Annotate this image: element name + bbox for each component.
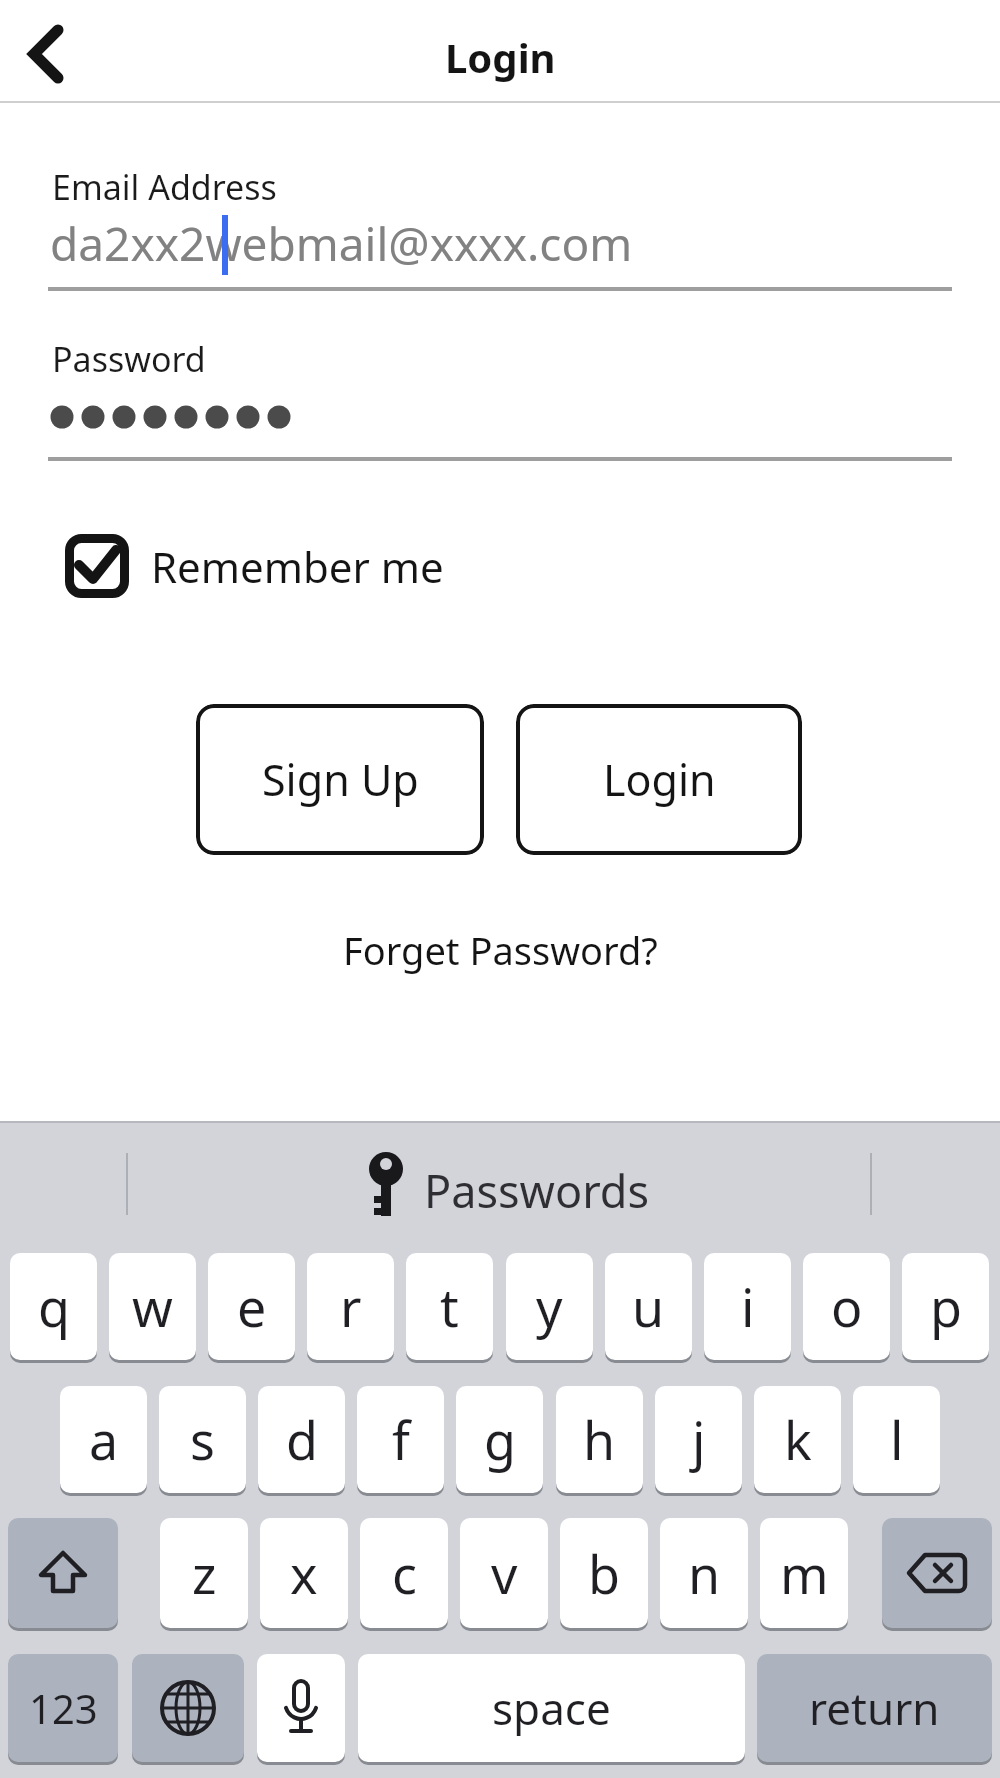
button[interactable]: k	[754, 1386, 841, 1493]
button[interactable]: Login	[516, 704, 802, 855]
button[interactable]: l	[853, 1386, 940, 1493]
button[interactable]: y	[506, 1253, 593, 1360]
staticText: i	[741, 1271, 755, 1342]
staticText: e	[237, 1271, 267, 1342]
staticText: k	[784, 1404, 812, 1475]
button[interactable]: c	[360, 1518, 448, 1628]
button[interactable]	[8, 1518, 118, 1628]
staticText: q	[38, 1271, 70, 1342]
staticText: Passwords	[424, 1160, 650, 1221]
staticText: Forget Password?	[343, 924, 658, 976]
button[interactable]: f	[357, 1386, 444, 1493]
button[interactable]: Remember me	[65, 534, 444, 598]
staticText: j	[692, 1404, 706, 1475]
button[interactable]: x	[260, 1518, 348, 1628]
staticText: u	[632, 1271, 665, 1342]
button[interactable]: b	[560, 1518, 648, 1628]
staticText: Email Address	[52, 164, 277, 210]
button[interactable]	[366, 1150, 406, 1220]
staticText: Remember me	[151, 538, 444, 595]
button[interactable]: m	[760, 1518, 848, 1628]
button[interactable]: w	[109, 1253, 196, 1360]
button[interactable]	[132, 1654, 244, 1762]
staticText: y	[536, 1271, 563, 1342]
button[interactable]	[257, 1654, 345, 1762]
staticText: s	[190, 1404, 215, 1475]
staticText: da2xx2webmail@xxxx.com	[50, 212, 633, 275]
button[interactable]: d	[258, 1386, 345, 1493]
button[interactable]: i	[704, 1253, 791, 1360]
button[interactable]: u	[605, 1253, 692, 1360]
staticText: Password	[52, 336, 206, 382]
staticText: Login	[445, 30, 556, 84]
staticText: r	[340, 1271, 362, 1342]
button[interactable]: Sign Up	[196, 704, 484, 855]
button[interactable]: space	[358, 1654, 745, 1762]
button[interactable]: n	[660, 1518, 748, 1628]
button[interactable]: o	[803, 1253, 890, 1360]
button[interactable]: g	[456, 1386, 543, 1493]
button[interactable]: v	[460, 1518, 548, 1628]
staticText: n	[688, 1538, 721, 1609]
staticText: a	[89, 1404, 119, 1475]
staticText: 123	[29, 1681, 98, 1735]
staticText: o	[831, 1271, 863, 1342]
staticText: v	[491, 1538, 518, 1609]
button[interactable]: q	[10, 1253, 97, 1360]
button[interactable]	[882, 1518, 992, 1628]
staticText: w	[132, 1271, 173, 1342]
button[interactable]	[14, 14, 86, 86]
button[interactable]: z	[160, 1518, 248, 1628]
button[interactable]: 123	[8, 1654, 118, 1762]
button[interactable]: e	[208, 1253, 295, 1360]
button[interactable]: s	[159, 1386, 246, 1493]
staticText: return	[809, 1678, 940, 1738]
staticText: p	[930, 1271, 962, 1342]
staticText: m	[780, 1538, 829, 1609]
button[interactable]: Forget Password?	[343, 924, 658, 976]
staticText: Login	[603, 750, 716, 809]
button[interactable]: a	[60, 1386, 147, 1493]
staticText: Sign Up	[262, 750, 419, 809]
staticText: space	[492, 1678, 611, 1738]
staticText: d	[286, 1404, 318, 1475]
staticText: h	[583, 1404, 616, 1475]
staticText: z	[192, 1538, 217, 1609]
button[interactable]: return	[757, 1654, 992, 1762]
staticText: l	[890, 1404, 904, 1475]
staticText: x	[290, 1538, 318, 1609]
staticText: g	[484, 1404, 516, 1475]
staticText: c	[392, 1538, 417, 1609]
button[interactable]: h	[556, 1386, 643, 1493]
button[interactable]: j	[655, 1386, 742, 1493]
staticText: t	[440, 1271, 459, 1342]
staticText: b	[588, 1538, 620, 1609]
button[interactable]: t	[406, 1253, 493, 1360]
staticText: f	[392, 1404, 410, 1475]
button[interactable]: p	[902, 1253, 989, 1360]
button[interactable]: r	[307, 1253, 394, 1360]
